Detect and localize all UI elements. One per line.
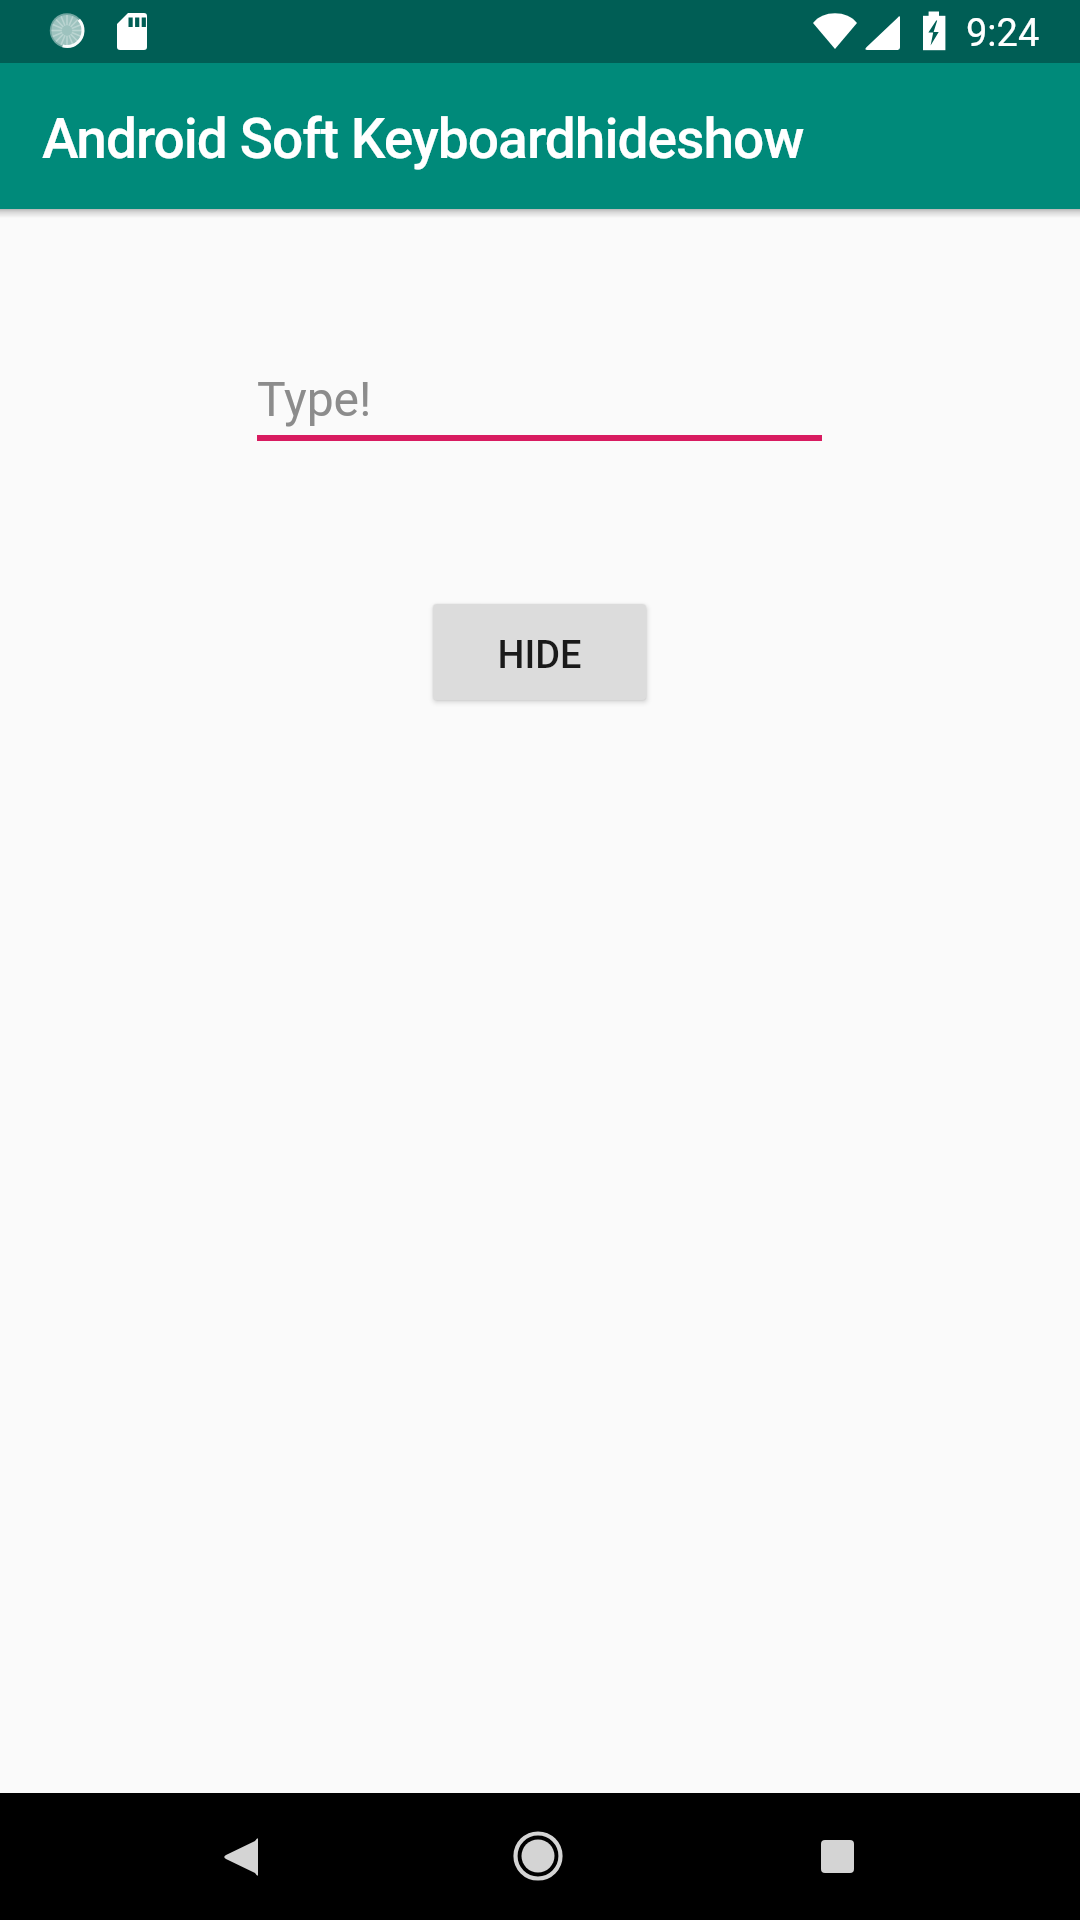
button[interactable]: Type! [257, 371, 822, 453]
staticText: 9:24 [966, 11, 1040, 56]
staticText: Type! [257, 371, 372, 427]
staticText: HIDE [497, 633, 582, 678]
button[interactable]: Home [493, 1811, 583, 1901]
button[interactable]: Recent apps [792, 1811, 882, 1901]
button[interactable]: HIDE [433, 604, 646, 700]
staticText: Android Soft Keyboardhideshow [42, 107, 804, 171]
button[interactable]: Back [196, 1812, 286, 1902]
